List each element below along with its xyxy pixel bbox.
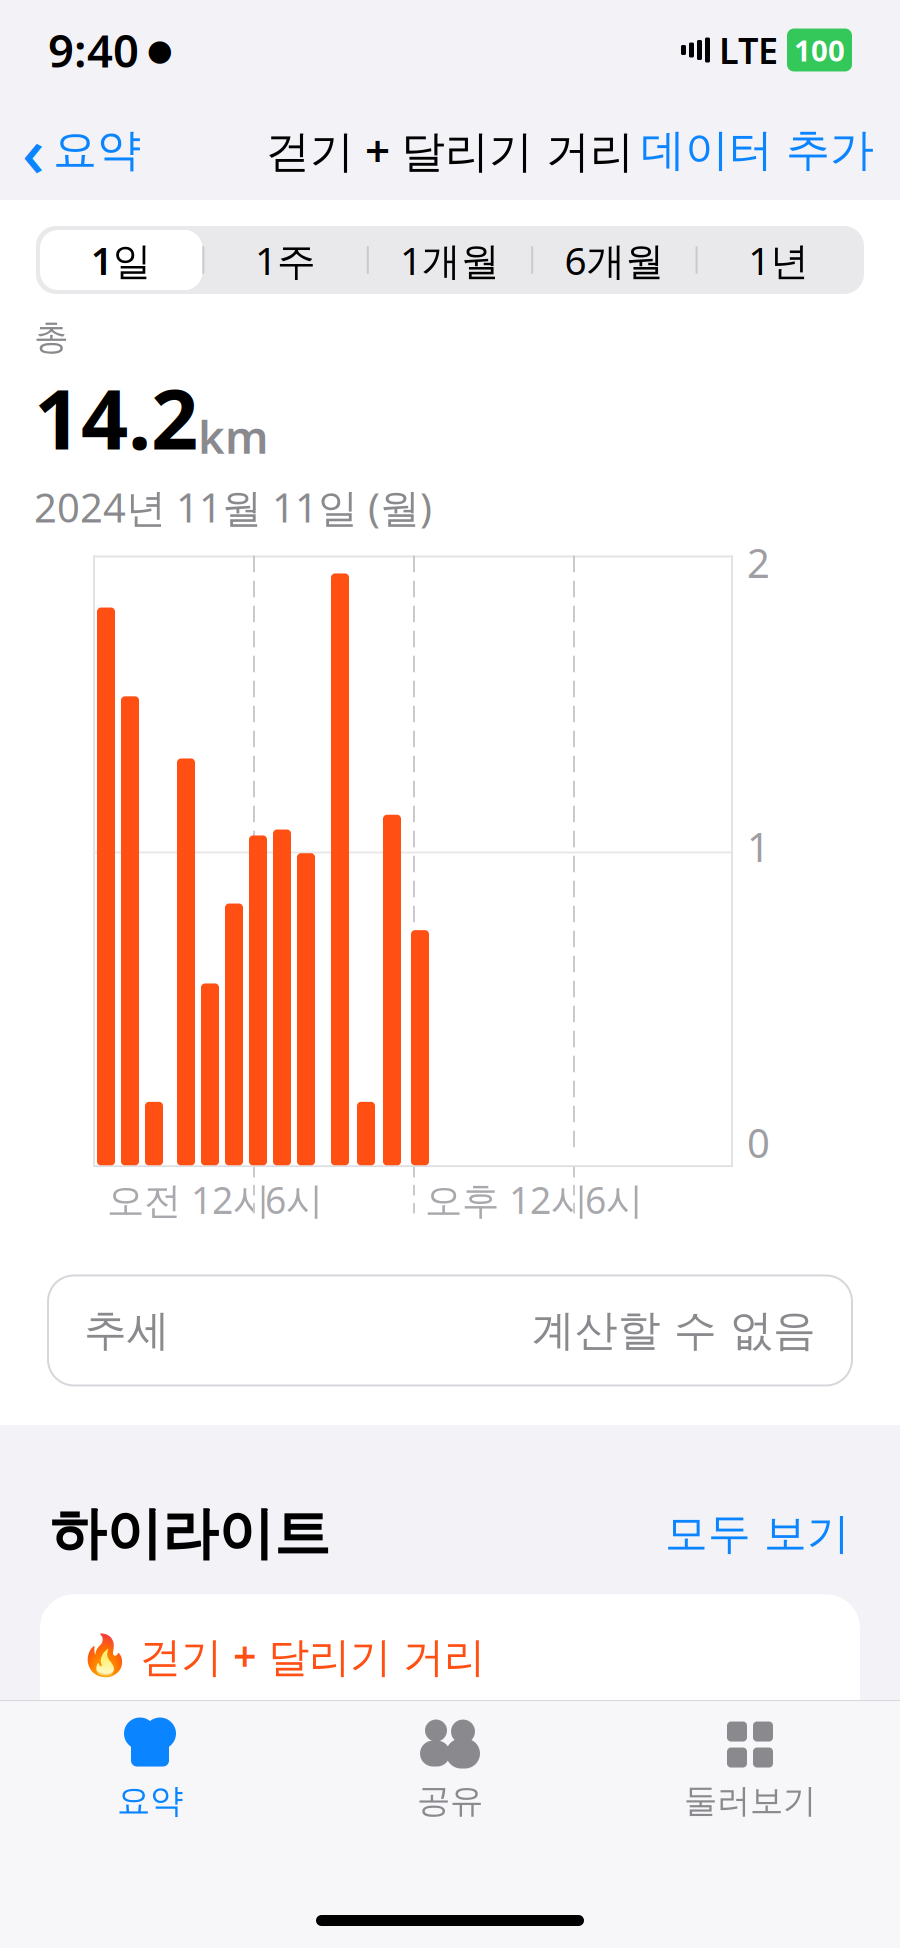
button[interactable]: 1개월: [369, 230, 531, 290]
staticText: 데이터 추가: [641, 123, 874, 177]
button[interactable]: 1주: [204, 230, 367, 290]
staticText: 9:40: [48, 20, 139, 80]
button[interactable]: 6개월: [533, 230, 696, 290]
staticText: 요약: [53, 123, 141, 177]
button[interactable]: ‹: [0, 94, 141, 206]
staticText: 2: [747, 536, 770, 589]
button[interactable]: 1일: [40, 230, 202, 290]
staticText: 6시: [265, 1175, 323, 1224]
staticText: 6시: [585, 1175, 643, 1224]
staticText: 추세: [84, 1304, 170, 1357]
staticText: km: [198, 406, 269, 466]
button[interactable]: 공유: [300, 1700, 600, 1821]
staticText: 총: [34, 316, 69, 359]
staticText: 걷기 + 달리기 거리: [140, 1628, 485, 1683]
staticText: 0: [747, 1116, 770, 1169]
button[interactable]: 데이터 추가: [641, 113, 900, 187]
staticText: 1일: [91, 234, 152, 286]
staticText: 둘러보기: [684, 1780, 816, 1821]
staticText: 모두 보기: [665, 1508, 850, 1560]
staticText: 계산할 수 없음: [532, 1304, 816, 1357]
staticText: 하이라이트: [50, 1499, 330, 1568]
staticText: 6개월: [564, 234, 664, 286]
staticText: 2024년 11월 11일 (월): [34, 480, 432, 533]
staticText: 공유: [417, 1780, 483, 1821]
staticText: 걷기 + 달리기 거리: [266, 121, 634, 179]
button[interactable]: 1년: [698, 230, 860, 290]
staticText: 1: [747, 820, 770, 873]
staticText: LTE: [719, 26, 778, 74]
staticText: 지난 7일간 걷기 및 달리기 거리는 하루 평균 3.9킬로미터입니다.: [80, 1709, 799, 1837]
staticText: 요약: [117, 1780, 183, 1821]
staticText: 100: [794, 30, 845, 69]
button[interactable]: 🔥: [40, 1594, 860, 1875]
staticText: 🔥: [80, 1633, 130, 1679]
button[interactable]: 모두 보기: [665, 1500, 850, 1568]
staticText: 14.2: [34, 363, 198, 472]
staticText: ●: [147, 33, 173, 67]
staticText: 오전 12시: [107, 1175, 270, 1224]
staticText: ‹: [22, 104, 45, 196]
staticText: 1주: [255, 234, 316, 286]
button[interactable]: 요약: [0, 1700, 300, 1821]
button[interactable]: 둘러보기: [600, 1700, 900, 1821]
button[interactable]: 추세: [48, 1275, 852, 1385]
staticText: 오후 12시: [425, 1175, 588, 1224]
staticText: 1개월: [400, 234, 500, 286]
staticText: 1년: [748, 234, 809, 286]
